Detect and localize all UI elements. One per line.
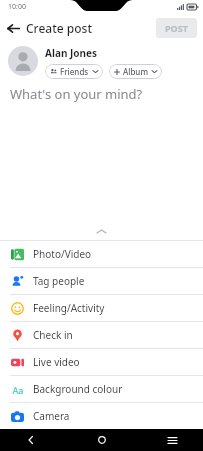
staticText: 10:00 <box>8 2 26 12</box>
staticText: Album <box>123 66 148 77</box>
staticText: Feeling/Activity <box>33 301 105 315</box>
button[interactable]: Home <box>93 431 111 449</box>
staticText: Photo/Video <box>33 247 92 261</box>
button[interactable]: Tag people <box>0 268 203 294</box>
button[interactable]: Expand <box>0 222 203 240</box>
button[interactable]: Back <box>0 15 26 41</box>
staticText: Camera <box>33 409 70 423</box>
button[interactable]: Live video <box>0 349 203 375</box>
staticText: Friends <box>60 66 89 77</box>
button[interactable]: Back <box>22 431 40 449</box>
staticText: Create post <box>26 20 93 36</box>
staticText: Tag people <box>33 274 85 288</box>
button[interactable]: Recent apps <box>163 431 181 449</box>
staticText: Check in <box>33 328 73 342</box>
staticText: Background colour <box>33 382 123 396</box>
button[interactable]: Friends <box>45 64 103 79</box>
staticText: Aa <box>12 384 24 396</box>
button[interactable]: POST <box>156 18 197 38</box>
staticText: Alan Jones <box>45 46 98 60</box>
staticText: What's on your mind? <box>10 85 143 103</box>
button[interactable]: Check in <box>0 322 203 348</box>
button[interactable]: Feeling/Activity <box>0 295 203 321</box>
button[interactable]: Album <box>109 64 162 79</box>
button[interactable]: Photo/Video <box>0 241 203 267</box>
button[interactable]: Aa <box>0 376 203 402</box>
button[interactable]: Camera <box>0 403 203 429</box>
staticText: Live video <box>33 355 80 369</box>
staticText: POST <box>165 22 188 34</box>
